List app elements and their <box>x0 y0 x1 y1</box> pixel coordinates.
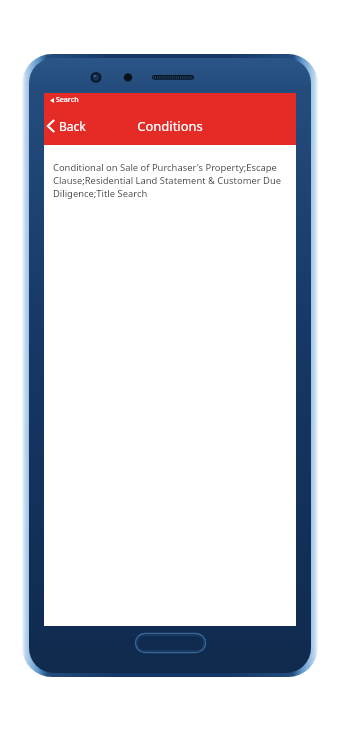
staticText: Conditional on Sale of Purchaser's Prope… <box>53 161 283 200</box>
button[interactable]: Back <box>44 111 96 141</box>
staticText: Back <box>59 118 86 134</box>
button[interactable]: Search <box>44 93 296 106</box>
staticText: Conditions <box>137 117 203 135</box>
staticText: Search <box>56 95 79 105</box>
other: Home <box>135 633 206 653</box>
